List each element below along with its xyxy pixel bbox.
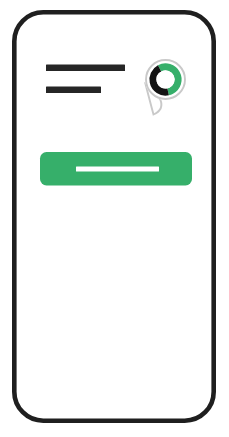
button[interactable]: Primary action button bbox=[0, 0, 229, 437]
